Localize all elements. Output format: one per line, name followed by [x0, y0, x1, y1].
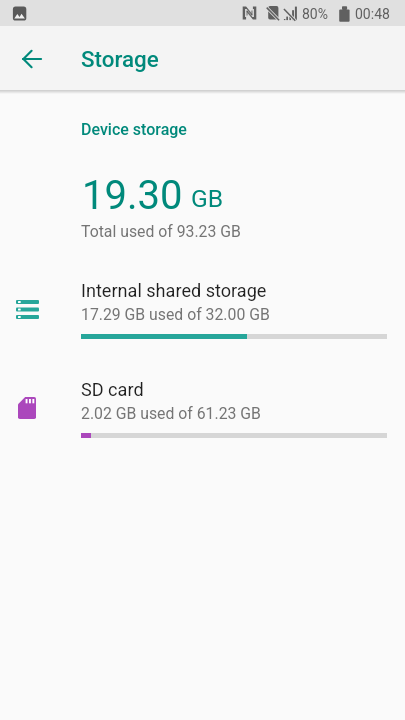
staticText: 2.02 GB used of 61.23 GB [81, 404, 261, 423]
button[interactable]: Internal shared storage [0, 272, 405, 368]
staticText: Storage [81, 46, 159, 72]
button[interactable]: SD card [0, 372, 405, 468]
staticText: 19.30 [82, 172, 183, 219]
staticText: 00:48 [355, 6, 390, 22]
staticText: 17.29 GB used of 32.00 GB [81, 305, 270, 324]
staticText: Device storage [81, 120, 187, 139]
staticText: Total used of 93.23 GB [81, 222, 241, 241]
staticText: 80% [302, 6, 328, 22]
staticText: GB [191, 184, 224, 213]
staticText: SD card [81, 379, 144, 400]
staticText: Internal shared storage [81, 280, 267, 301]
button[interactable]: Navigate up [12, 39, 52, 79]
